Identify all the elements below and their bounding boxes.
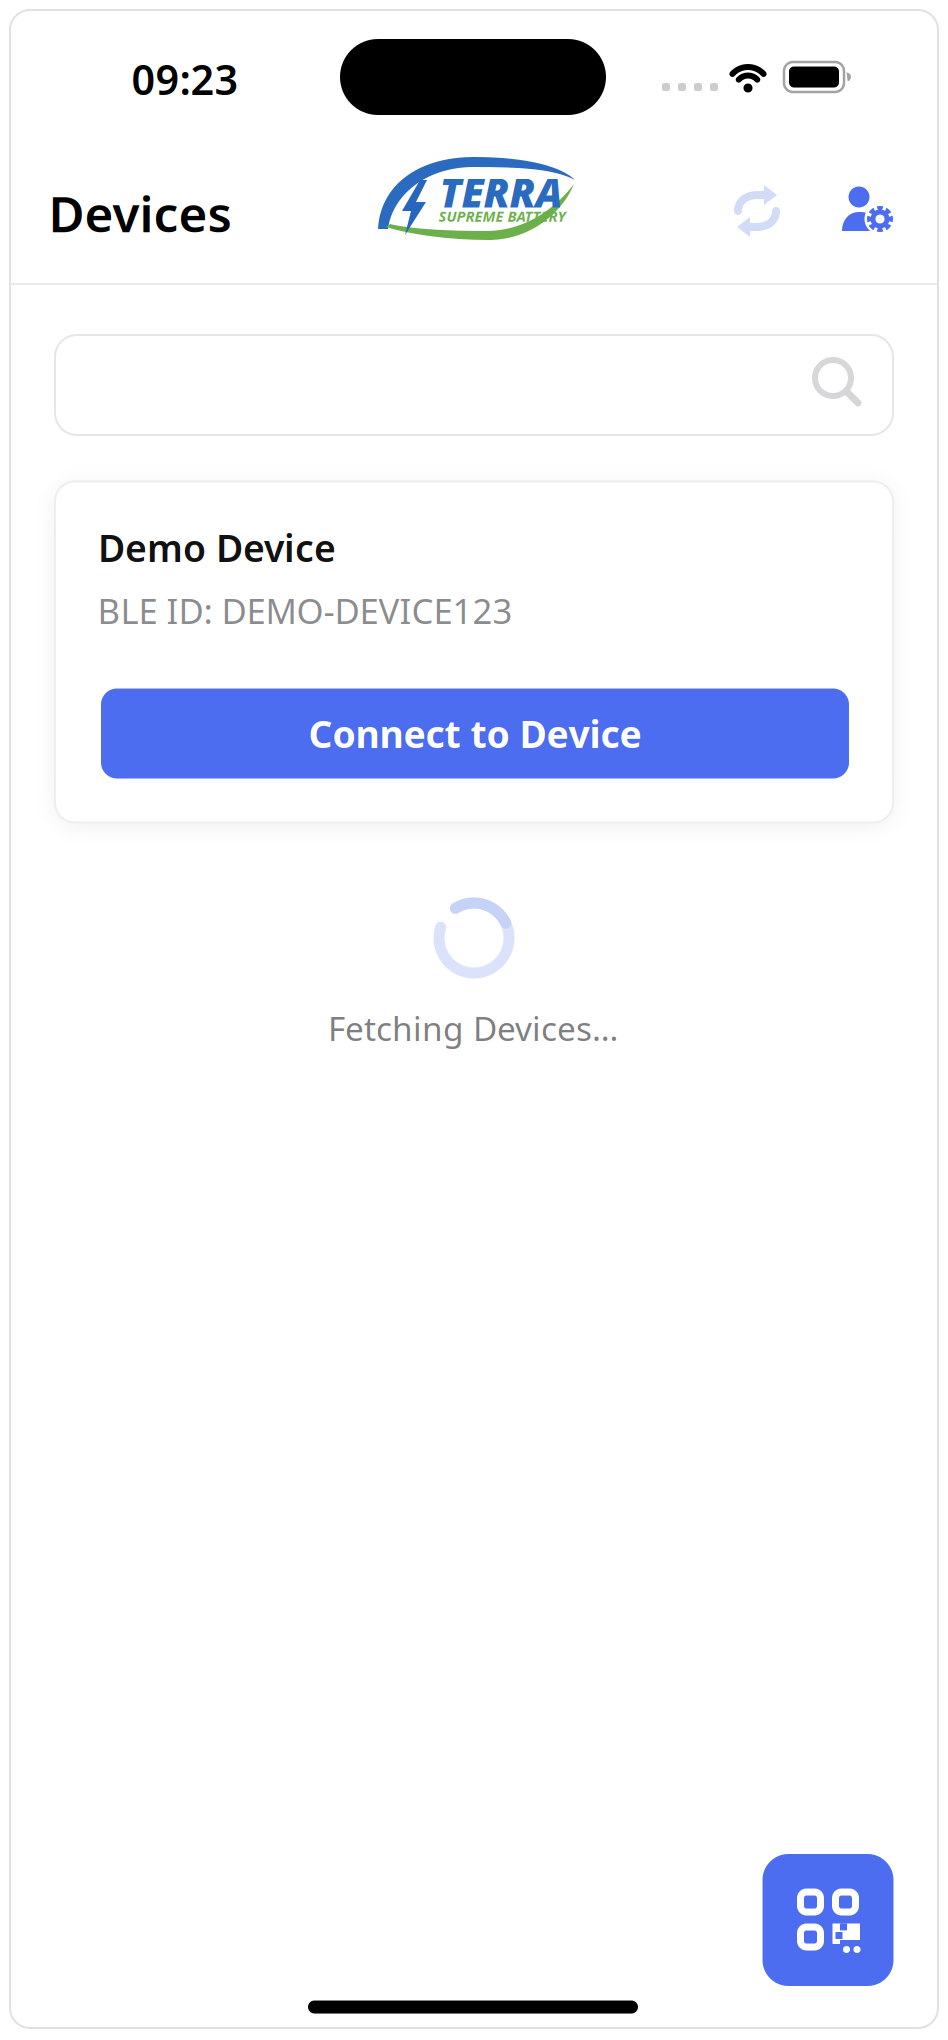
staticText: Devices bbox=[48, 180, 231, 246]
staticText: Connect to Device bbox=[308, 709, 641, 758]
button[interactable]: Connect to Device bbox=[101, 688, 849, 778]
staticText: TERRA bbox=[439, 165, 562, 218]
staticText: Fetching Devices… bbox=[328, 1006, 618, 1050]
button[interactable]: Account settings bbox=[830, 175, 902, 247]
button[interactable]: Search bbox=[55, 335, 893, 435]
staticText: Demo Device bbox=[98, 523, 336, 572]
button[interactable]: Refresh bbox=[721, 175, 793, 247]
button[interactable]: Scan QR code bbox=[762, 1854, 893, 1986]
staticText: SUPREME BATTERY bbox=[438, 206, 565, 226]
staticText: 09:23 bbox=[131, 52, 238, 106]
staticText: BLE ID: DEMO-DEVICE123 bbox=[97, 587, 512, 633]
